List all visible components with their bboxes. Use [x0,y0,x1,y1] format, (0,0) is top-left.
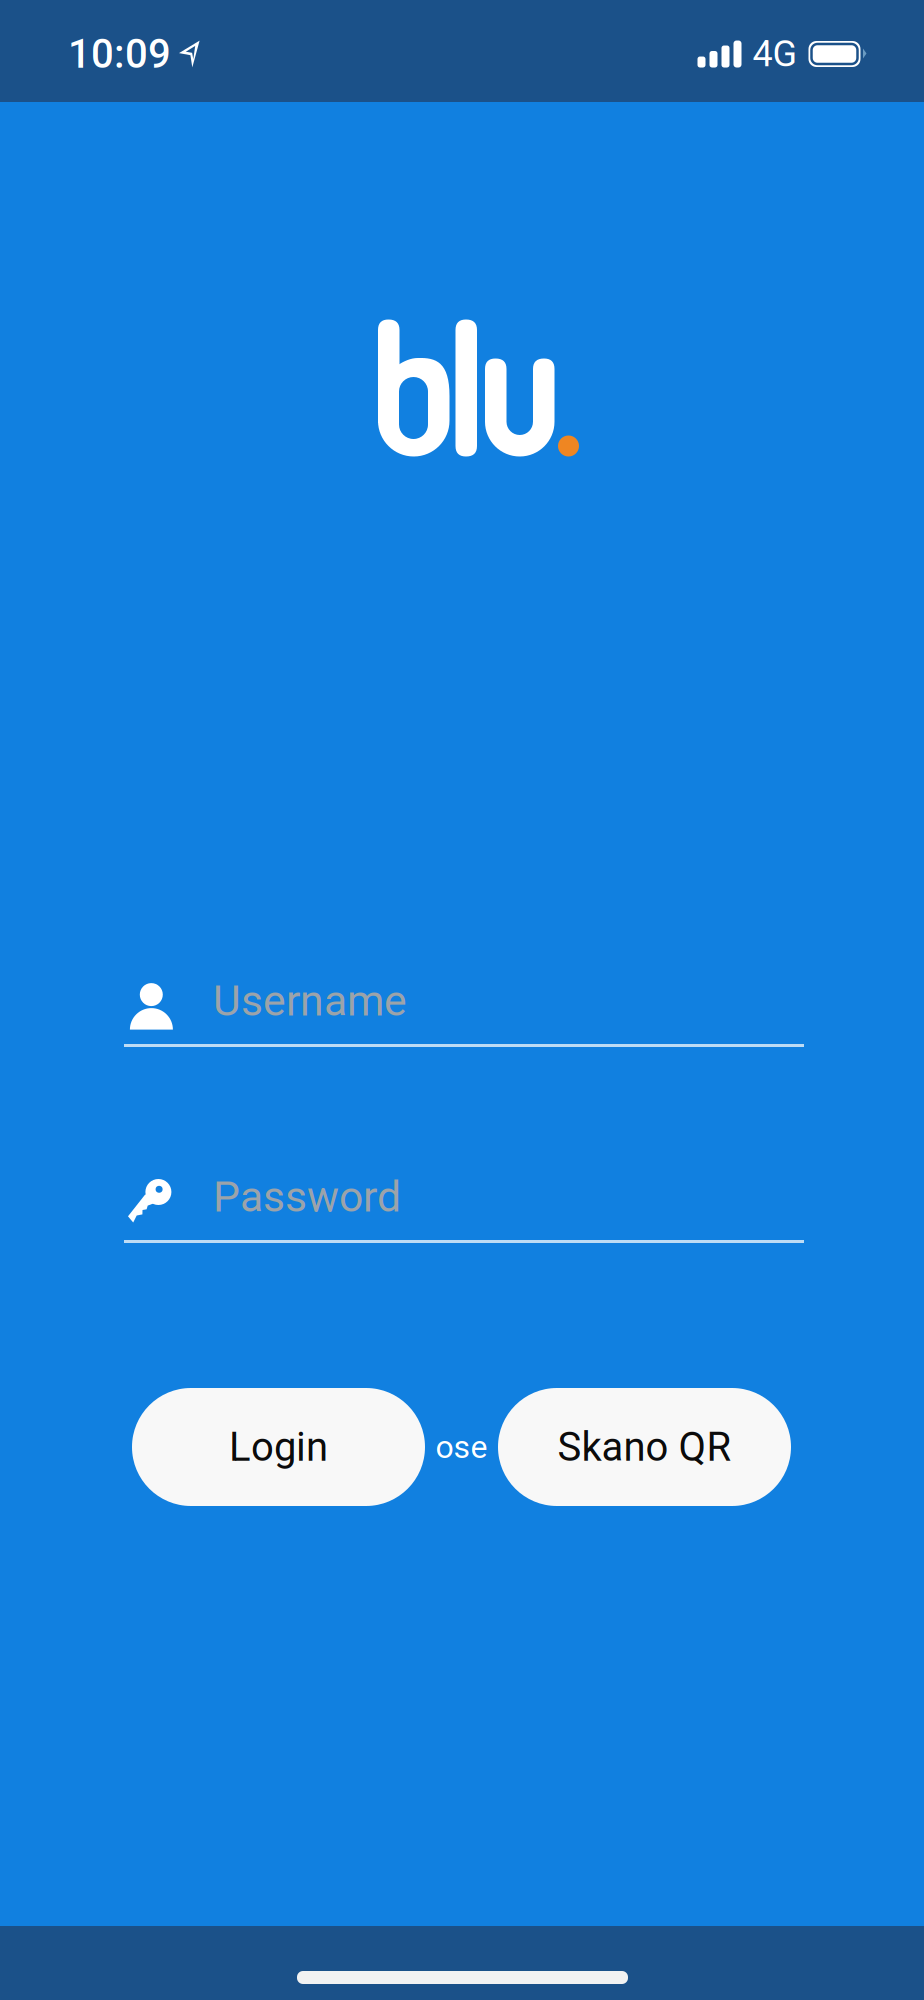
staticText: ose [435,1428,487,1466]
staticText: Password [213,1172,401,1222]
button[interactable]: Username [124,966,804,1047]
staticText: 4G [752,33,797,75]
button[interactable]: Skano QR [498,1388,791,1506]
button[interactable]: Login [132,1388,425,1506]
button[interactable]: Password [124,1162,804,1243]
staticText: Login [229,1424,328,1470]
staticText: 10:09 [68,31,171,77]
staticText: Username [213,976,407,1026]
staticText: Skano QR [557,1424,731,1470]
